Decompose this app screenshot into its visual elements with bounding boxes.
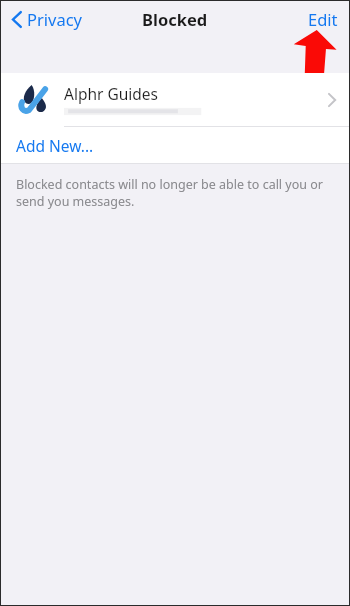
staticText: Privacy [27, 8, 83, 30]
button[interactable]: Privacy [8, 4, 87, 34]
staticText: Alphr Guides [64, 83, 159, 104]
button[interactable]: Edit [304, 4, 342, 34]
staticText: Blocked contacts will no longer be able … [16, 176, 324, 209]
staticText: Blocked [142, 8, 208, 30]
button[interactable]: Add New... [0, 127, 350, 163]
staticText: Add New... [16, 135, 94, 156]
staticText: Edit [308, 8, 338, 30]
button[interactable]: Alphr Guides [0, 73, 350, 126]
